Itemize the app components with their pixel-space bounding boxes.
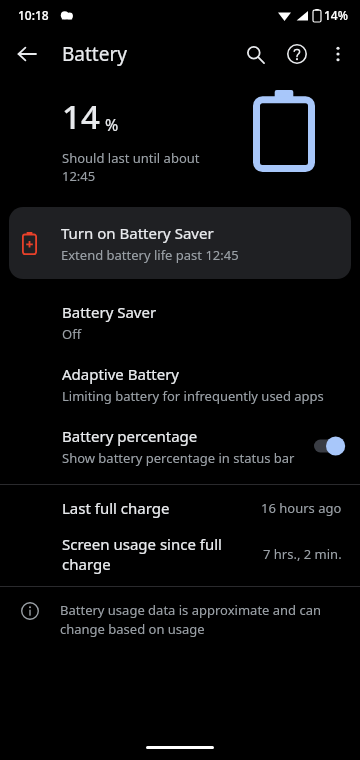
staticText: Screen usage since full charge bbox=[62, 534, 255, 574]
staticText: Battery usage data is approximate and ca… bbox=[60, 601, 340, 638]
button[interactable]: Battery Saver bbox=[0, 291, 360, 353]
staticText: 14 bbox=[62, 94, 100, 139]
staticText: 14% bbox=[324, 7, 348, 23]
staticText: Adaptive Battery bbox=[62, 364, 180, 384]
button[interactable]: Last full charge bbox=[0, 485, 360, 531]
staticText: Last full charge bbox=[62, 498, 253, 518]
staticText: 10:18 bbox=[18, 7, 49, 23]
staticText: Off bbox=[62, 325, 82, 343]
button[interactable]: Search bbox=[234, 33, 276, 75]
button[interactable]: Screen usage since full charge bbox=[0, 531, 360, 577]
button[interactable]: Help bbox=[276, 33, 318, 75]
staticText: Battery bbox=[62, 41, 127, 67]
staticText: % bbox=[105, 114, 119, 136]
staticText: Battery percentage bbox=[62, 426, 198, 446]
button[interactable]: Adaptive Battery bbox=[0, 353, 360, 415]
staticText: Should last until about 12:45 bbox=[62, 149, 200, 185]
staticText: Limiting battery for infrequently used a… bbox=[62, 387, 324, 405]
button[interactable]: Battery percentage bbox=[0, 415, 360, 477]
staticText: Battery Saver bbox=[62, 302, 157, 322]
staticText: Extend battery life past 12:45 bbox=[61, 246, 239, 264]
staticText: 7 hrs., 2 min. bbox=[263, 545, 342, 563]
staticText: Turn on Battery Saver bbox=[61, 223, 214, 243]
button[interactable]: More options bbox=[318, 33, 358, 75]
staticText: Show battery percentage in status bar bbox=[62, 449, 295, 467]
staticText: 16 hours ago bbox=[261, 499, 342, 517]
button[interactable]: Turn on Battery Saver bbox=[9, 207, 351, 279]
button[interactable]: Back bbox=[6, 33, 48, 75]
